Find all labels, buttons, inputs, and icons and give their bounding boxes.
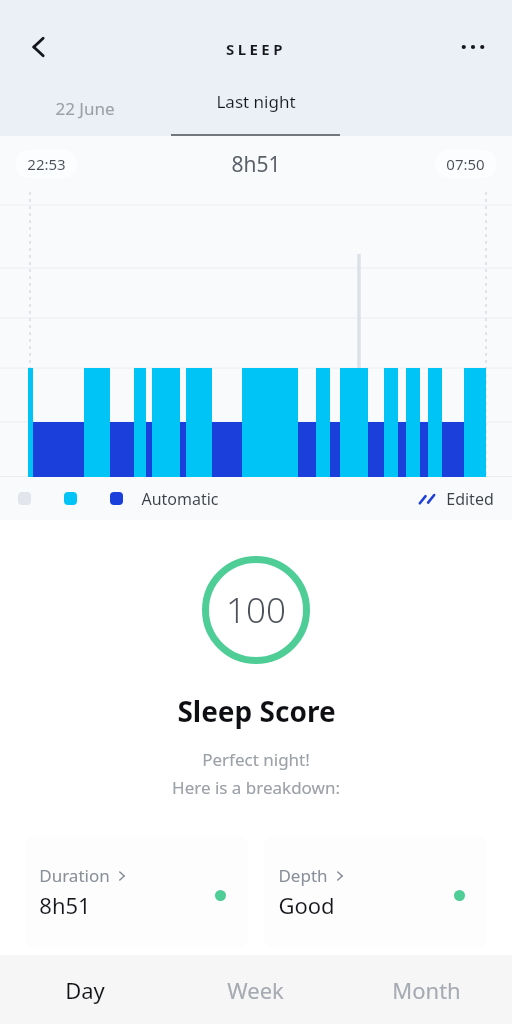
staticText: Sleep Score xyxy=(177,692,336,730)
button[interactable]: Duration xyxy=(25,836,248,948)
staticText: Last night xyxy=(216,90,296,113)
button[interactable]: Month xyxy=(341,955,512,1024)
button[interactable]: Day xyxy=(0,955,170,1024)
staticText: Month xyxy=(392,975,461,1005)
button[interactable]: Back xyxy=(14,22,64,72)
staticText: SLEEP xyxy=(226,39,286,59)
staticText: 07:50 xyxy=(446,154,485,174)
staticText: Perfect night! xyxy=(202,748,310,771)
staticText: Automatic xyxy=(141,488,219,510)
staticText: Week xyxy=(227,975,284,1005)
staticText: 22:53 xyxy=(27,154,66,174)
button[interactable]: Week xyxy=(170,955,341,1024)
button[interactable]: Last night xyxy=(170,80,341,136)
staticText: 8h51 xyxy=(39,890,91,920)
staticText: 22 June xyxy=(55,97,115,120)
button[interactable]: 22 June xyxy=(0,80,170,136)
staticText: Duration xyxy=(39,864,110,887)
staticText: Edited xyxy=(446,488,494,510)
staticText: Depth xyxy=(278,864,328,887)
staticText: Good xyxy=(278,890,335,920)
button[interactable]: Depth xyxy=(264,836,487,948)
staticText: Day xyxy=(65,975,105,1005)
button[interactable]: More options xyxy=(448,22,498,72)
staticText: Here is a breakdown: xyxy=(172,776,340,799)
staticText: 8h51 xyxy=(231,150,281,179)
staticText: 100 xyxy=(226,586,286,634)
